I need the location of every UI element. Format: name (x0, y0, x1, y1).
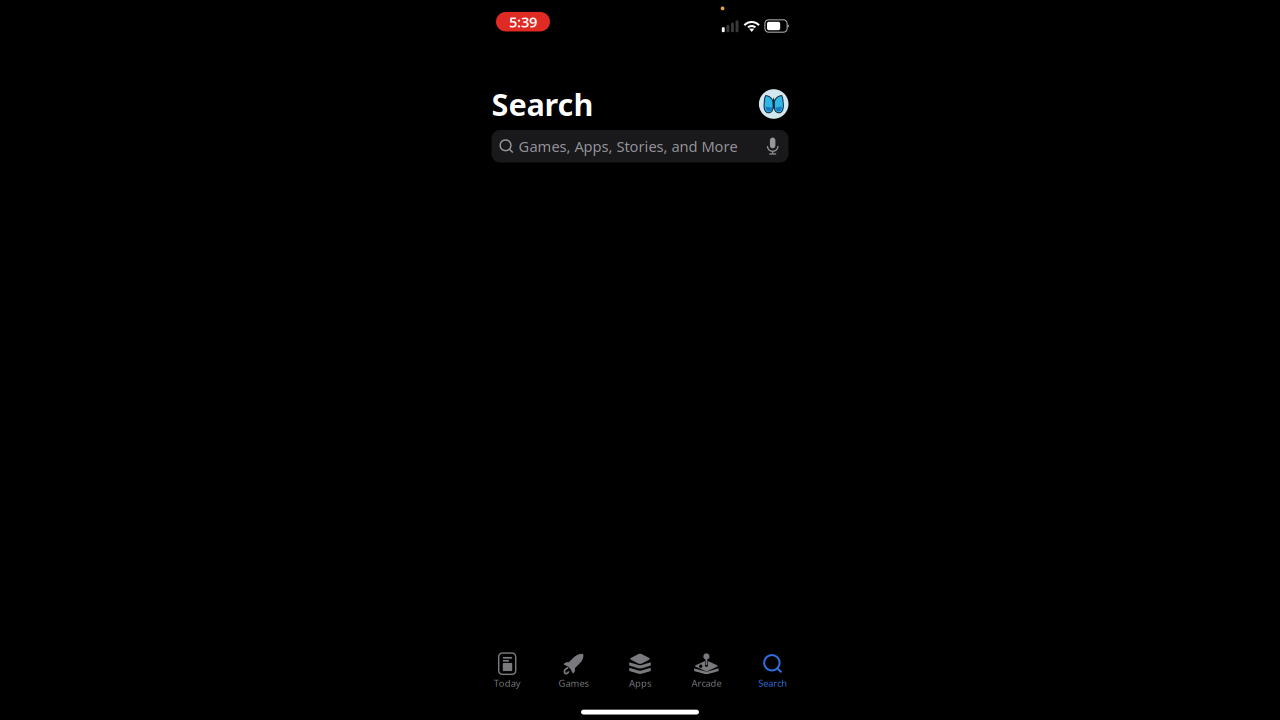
button[interactable]: Arcade (673, 652, 740, 690)
staticText: Search (758, 677, 787, 689)
button[interactable]: Search (740, 652, 806, 690)
staticText: Games, Apps, Stories, and More (518, 136, 737, 156)
button[interactable]: Today (474, 652, 540, 690)
staticText: Today (494, 677, 521, 689)
button[interactable]: Apps (607, 652, 673, 690)
button[interactable]: Account (759, 89, 788, 119)
button[interactable]: Games, Apps, Stories, and More (491, 130, 788, 162)
staticText: 5:39 (509, 12, 537, 31)
button[interactable]: Games (540, 652, 607, 690)
staticText: Arcade (691, 677, 721, 689)
staticText: Search (491, 84, 593, 124)
staticText: Games (559, 677, 589, 689)
staticText: Apps (629, 677, 651, 689)
